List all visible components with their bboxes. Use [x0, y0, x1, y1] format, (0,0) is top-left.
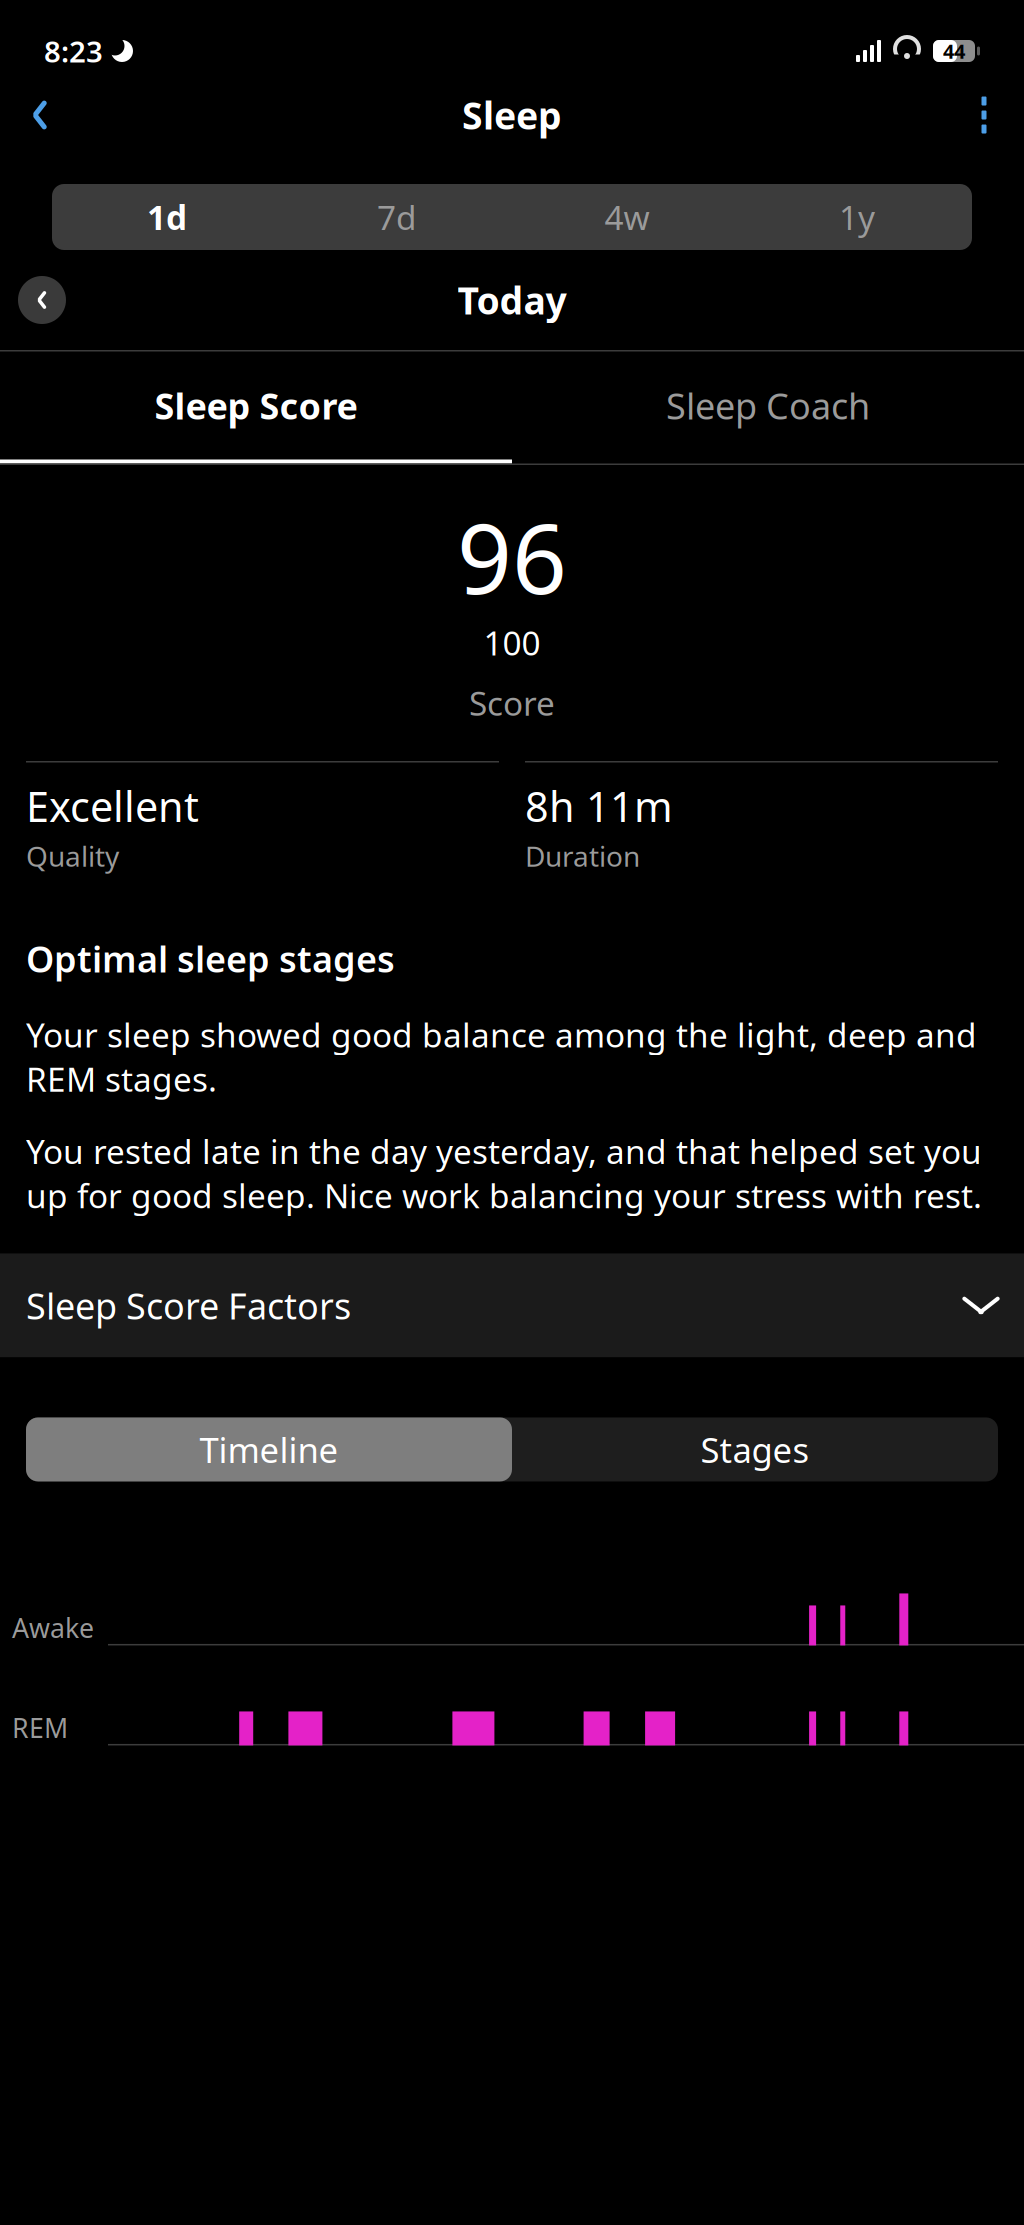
staticText: 100: [483, 620, 540, 665]
button[interactable]: More options: [948, 79, 1020, 151]
button[interactable]: 7d: [282, 184, 512, 250]
staticText: Timeline: [199, 1426, 338, 1472]
staticText: Optimal sleep stages: [26, 935, 395, 982]
button[interactable]: Timeline: [26, 1417, 512, 1481]
staticText: REM: [12, 1710, 68, 1745]
staticText: Duration: [525, 837, 640, 875]
button[interactable]: 4w: [512, 184, 742, 250]
button[interactable]: Previous day: [18, 276, 66, 324]
staticText: 44: [943, 38, 965, 64]
staticText: Today: [457, 275, 566, 325]
staticText: You rested late in the day yesterday, an…: [26, 1129, 982, 1217]
button[interactable]: 1y: [742, 184, 972, 250]
staticText: Sleep: [462, 90, 562, 140]
staticText: Excellent: [26, 778, 199, 833]
staticText: Stages: [700, 1426, 809, 1472]
button[interactable]: Back: [4, 79, 76, 151]
button[interactable]: Stages: [512, 1417, 998, 1481]
staticText: Awake: [12, 1610, 94, 1645]
staticText: Your sleep showed good balance among the…: [26, 1012, 977, 1101]
staticText: Score: [469, 681, 555, 725]
staticText: 96: [457, 493, 567, 620]
staticText: Sleep Score: [154, 382, 357, 429]
staticText: 1y: [839, 195, 875, 239]
button[interactable]: Sleep Coach: [512, 351, 1024, 463]
button[interactable]: 1d: [52, 184, 282, 250]
staticText: 8h 11m: [525, 778, 673, 833]
staticText: Sleep Coach: [666, 382, 870, 429]
button[interactable]: Sleep Score: [0, 351, 512, 463]
staticText: 7d: [377, 195, 417, 239]
button[interactable]: Sleep Score Factors: [0, 1253, 1024, 1357]
staticText: Quality: [26, 837, 119, 875]
staticText: 1d: [147, 195, 187, 239]
staticText: Sleep Score Factors: [26, 1281, 351, 1329]
staticText: 8:23: [44, 31, 103, 70]
staticText: 4w: [604, 195, 649, 239]
